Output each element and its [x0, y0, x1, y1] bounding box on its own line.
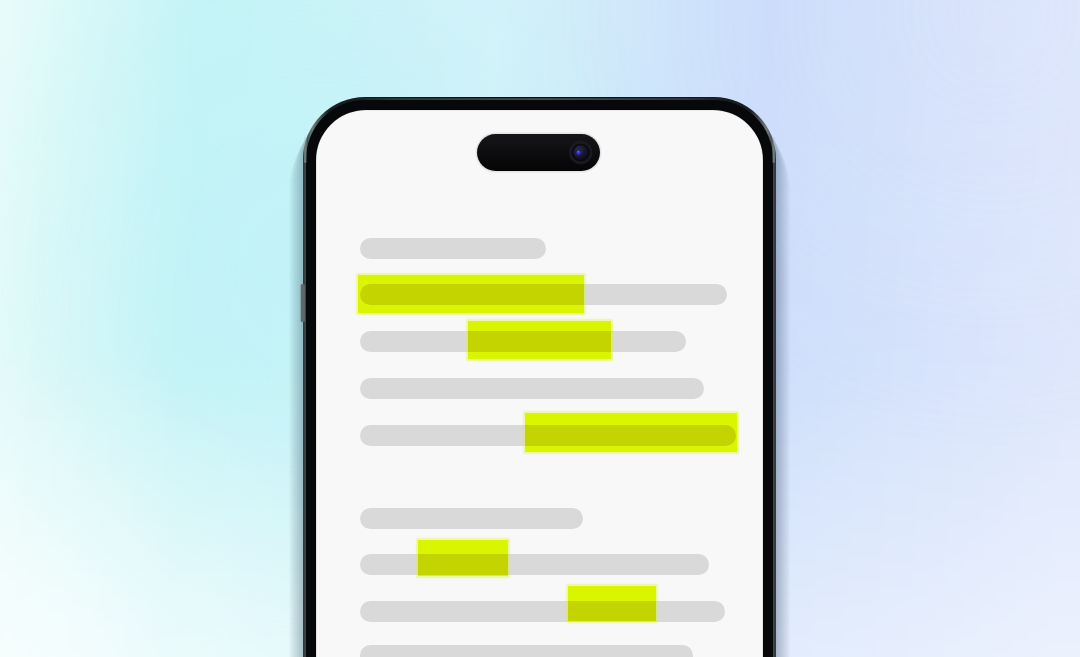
button[interactable]: Phone mockup illustration: [0, 0, 1080, 657]
